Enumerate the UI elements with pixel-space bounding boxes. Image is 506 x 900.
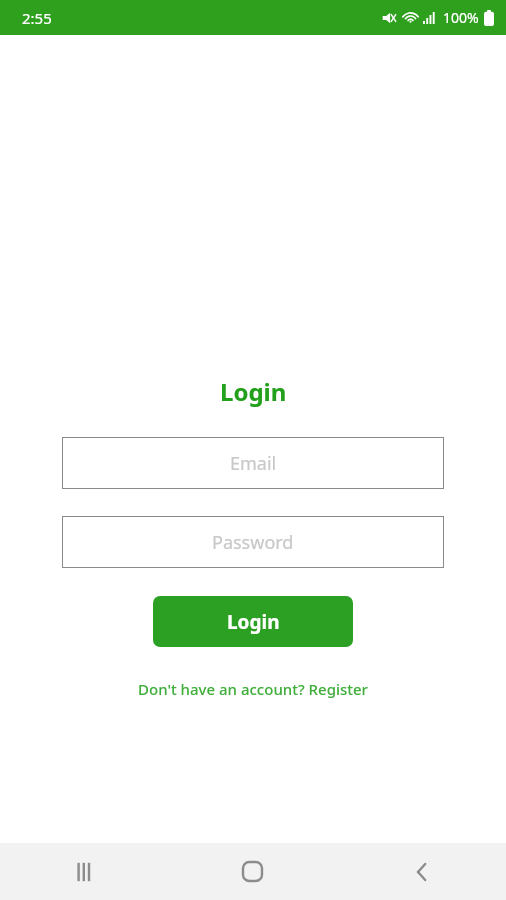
button[interactable]: Password bbox=[62, 516, 444, 568]
button[interactable]: Don't have an account? Register bbox=[138, 679, 368, 699]
staticText: Login bbox=[227, 609, 280, 635]
staticText: 2:55 bbox=[22, 8, 52, 28]
button[interactable]: Login bbox=[153, 596, 353, 647]
button[interactable]: Back bbox=[337, 843, 506, 900]
button[interactable]: Recents bbox=[0, 843, 168, 900]
button[interactable]: Home bbox=[168, 843, 337, 900]
button[interactable]: Email bbox=[62, 437, 444, 489]
staticText: Email bbox=[230, 451, 277, 476]
staticText: 100% bbox=[443, 8, 479, 27]
staticText: Don't have an account? Register bbox=[138, 679, 368, 699]
staticText: Login bbox=[220, 375, 287, 408]
staticText: Password bbox=[212, 530, 294, 555]
